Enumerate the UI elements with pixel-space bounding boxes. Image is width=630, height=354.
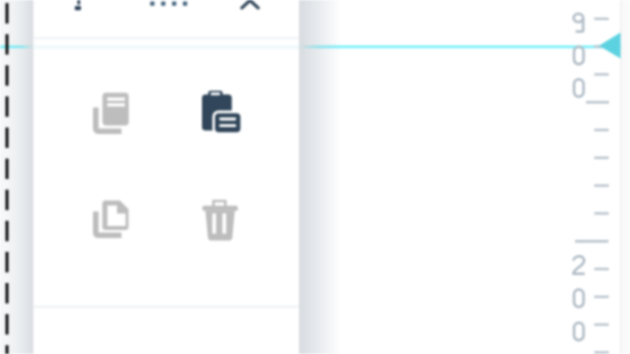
other: Toolbar [0, 0, 630, 354]
